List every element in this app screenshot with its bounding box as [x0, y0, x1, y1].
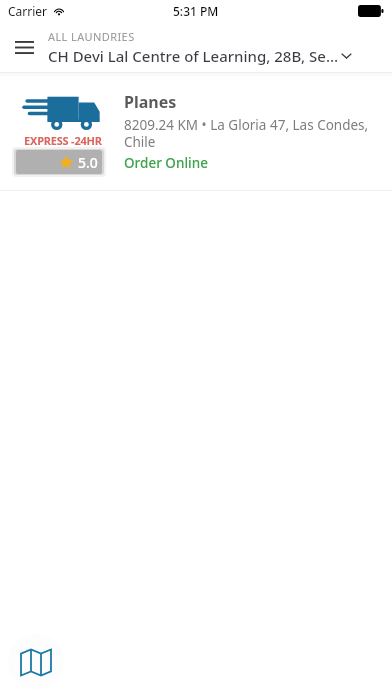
staticText: ALL LAUNDRIES — [48, 29, 135, 44]
button[interactable]: Show map — [8, 634, 64, 690]
button[interactable]: Order Online — [124, 154, 208, 172]
staticText: 8209.24 KM • La Gloria 47, Las Condes, C… — [124, 116, 378, 151]
staticText: CH Devi Lal Centre of Learning, 28B, Se… — [48, 46, 339, 66]
staticText: 5:31 PM — [173, 3, 219, 19]
button[interactable]: Open navigation menu — [0, 23, 48, 71]
staticText: 5.0 — [78, 153, 98, 172]
staticText: Planes — [124, 91, 177, 113]
staticText: EXPRESS -24HR — [24, 133, 102, 148]
staticText: Carrier — [8, 3, 48, 19]
button[interactable]: EXPRESS -24HR — [0, 76, 392, 190]
button[interactable]: ALL LAUNDRIES — [48, 29, 392, 66]
